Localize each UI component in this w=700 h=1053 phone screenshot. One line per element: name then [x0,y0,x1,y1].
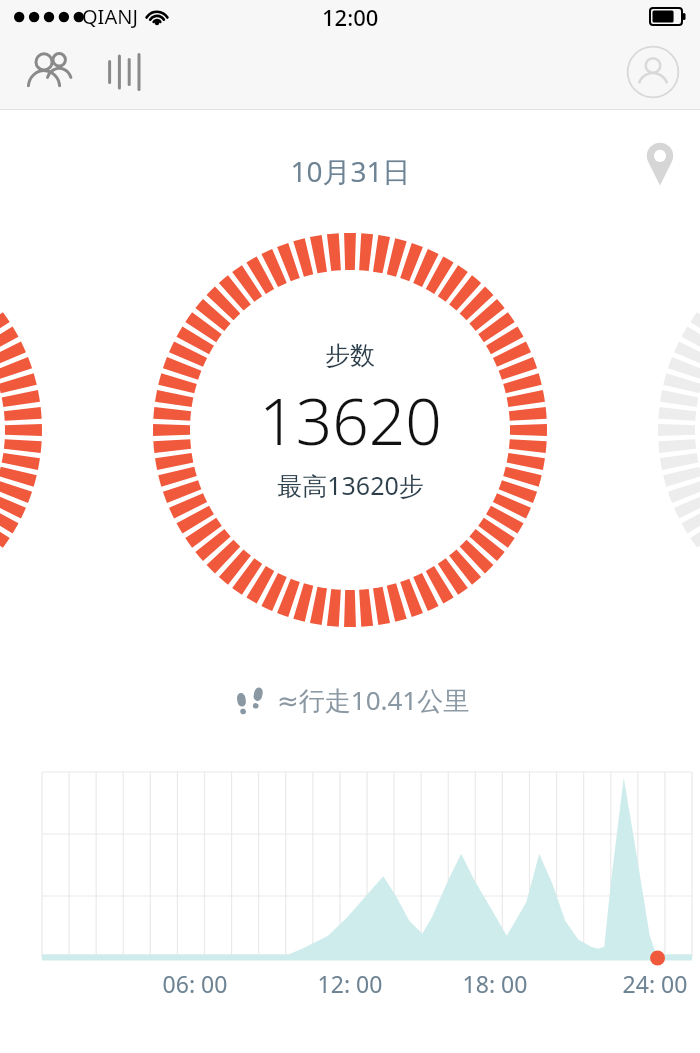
button[interactable] [42,772,692,962]
staticText: ≈行走10.41公里 [277,682,470,718]
button[interactable]: Statistics [96,44,152,100]
staticText: 18: 00 [447,968,543,999]
button[interactable]: Friends [22,44,78,100]
staticText: 12:00 [322,2,379,32]
staticText: 10月31日 [290,152,411,190]
staticText: 最高13620步 [277,468,424,502]
staticText: QIANJ [82,3,138,30]
staticText: 24: 00 [607,968,700,999]
button[interactable]: ≈行走10.41公里 [231,680,470,720]
staticText: 13620 [259,377,442,464]
button[interactable]: 步数 [150,340,550,502]
staticText: 步数 [325,340,375,371]
button[interactable]: Profile [626,45,680,99]
staticText: 06: 00 [147,968,243,999]
button[interactable]: Location [638,140,682,184]
staticText: 12: 00 [302,968,398,999]
